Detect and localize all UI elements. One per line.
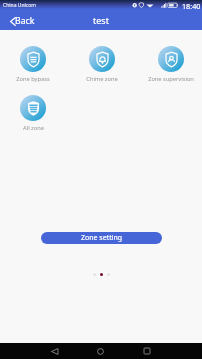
button[interactable]: Home bbox=[90, 343, 110, 359]
staticText: Zone supervision bbox=[148, 75, 194, 82]
staticText: China Unicom bbox=[3, 2, 36, 9]
button[interactable]: Zone supervision bbox=[136, 46, 202, 82]
staticText: 18:40 bbox=[182, 1, 201, 11]
staticText: Chime zone bbox=[86, 75, 118, 82]
button[interactable]: Zone bypass bbox=[0, 46, 67, 82]
staticText: Zone setting bbox=[81, 233, 123, 243]
staticText: Zone bypass bbox=[16, 75, 50, 82]
staticText: Back bbox=[15, 15, 35, 27]
button[interactable]: Chime zone bbox=[67, 46, 136, 82]
button[interactable]: Recent apps bbox=[137, 343, 157, 359]
staticText: test bbox=[93, 14, 109, 26]
button[interactable]: All zone bbox=[0, 95, 67, 131]
button[interactable]: Back bbox=[44, 343, 64, 359]
button[interactable]: Back bbox=[5, 11, 39, 30]
button[interactable]: Zone setting bbox=[41, 232, 162, 244]
staticText: All zone bbox=[23, 124, 44, 131]
